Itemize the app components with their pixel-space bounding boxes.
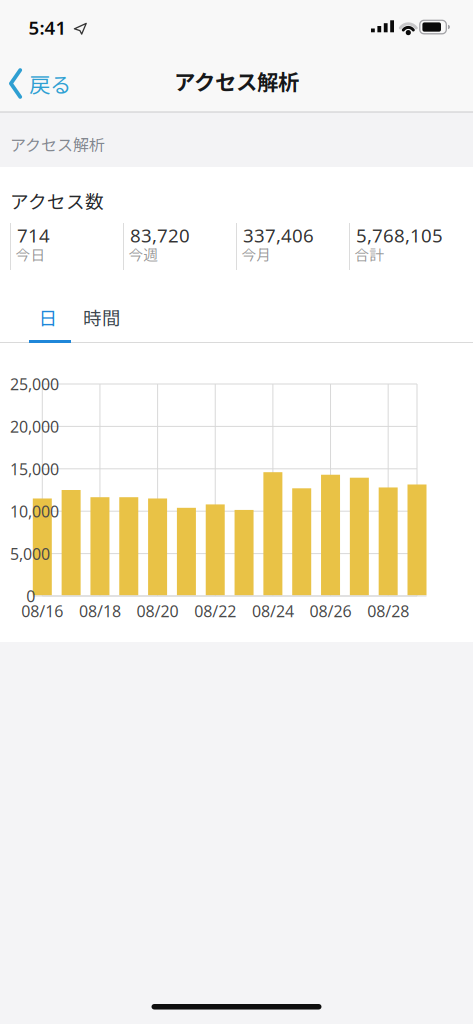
staticText: 5,000 bbox=[10, 543, 50, 564]
button[interactable]: 日 bbox=[27, 300, 69, 334]
staticText: 08/18 bbox=[79, 600, 121, 622]
staticText: 83,720 bbox=[130, 223, 190, 248]
staticText: アクセス解析 bbox=[10, 132, 105, 156]
staticText: 08/22 bbox=[194, 600, 236, 622]
staticText: アクセス数 bbox=[10, 187, 104, 214]
staticText: 日 bbox=[38, 303, 57, 330]
staticText: 10,000 bbox=[10, 501, 59, 522]
staticText: 5,768,105 bbox=[356, 223, 443, 248]
staticText: 合計 bbox=[354, 243, 384, 265]
staticText: 337,406 bbox=[243, 223, 314, 248]
button[interactable]: 時間 bbox=[83, 300, 121, 334]
staticText: 15,000 bbox=[10, 458, 59, 479]
button[interactable]: 戻る bbox=[0, 61, 71, 105]
staticText: 戻る bbox=[29, 68, 71, 99]
staticText: 0 bbox=[26, 585, 35, 607]
staticText: 今日 bbox=[15, 243, 45, 265]
staticText: 08/28 bbox=[367, 600, 409, 622]
staticText: 08/20 bbox=[137, 600, 179, 622]
staticText: 時間 bbox=[83, 303, 121, 330]
staticText: 08/26 bbox=[309, 600, 351, 622]
staticText: 今週 bbox=[128, 243, 158, 265]
staticText: 714 bbox=[17, 223, 50, 248]
staticText: アクセス解析 bbox=[174, 65, 299, 96]
staticText: 5:41 bbox=[28, 15, 66, 40]
staticText: 25,000 bbox=[10, 373, 59, 395]
staticText: 20,000 bbox=[10, 416, 59, 437]
staticText: 今月 bbox=[241, 243, 271, 265]
staticText: 08/16 bbox=[21, 600, 63, 622]
staticText: 08/24 bbox=[252, 600, 294, 622]
